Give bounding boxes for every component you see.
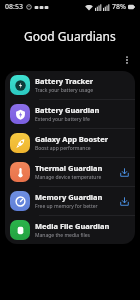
button[interactable]: Install Thermal Guardian (118, 166, 130, 178)
button[interactable]: Battery Tracker (5, 71, 135, 99)
staticText: Thermal Guardian (35, 163, 103, 173)
staticText: Battery Tracker (35, 76, 94, 86)
staticText: Good Guardians (24, 28, 116, 44)
button[interactable]: Install Memory Guardian (118, 195, 130, 207)
button[interactable]: More options (119, 52, 135, 68)
button[interactable]: Memory Guardian (5, 187, 135, 215)
button[interactable]: Galaxy App Booster (5, 129, 135, 157)
staticText: Manage the media files (35, 232, 90, 239)
staticText: Track your battery usage (35, 87, 94, 94)
staticText: Memory Guardian (35, 192, 103, 202)
button[interactable]: Media File Guardian (5, 216, 135, 244)
staticText: Media File Guardian (35, 221, 110, 231)
staticText: Manage device temperature (35, 174, 102, 181)
staticText: Free up memory for better performance (35, 203, 115, 210)
staticText: Galaxy App Booster (35, 134, 109, 144)
staticText: Extend your battery life (35, 116, 90, 123)
staticText: 08:53 (5, 2, 23, 12)
button[interactable]: Battery Guardian (5, 100, 135, 128)
staticText: Boost app performance (35, 145, 91, 152)
staticText: 78% (112, 2, 126, 12)
staticText: Battery Guardian (35, 105, 100, 115)
button[interactable]: Thermal Guardian (5, 158, 135, 186)
